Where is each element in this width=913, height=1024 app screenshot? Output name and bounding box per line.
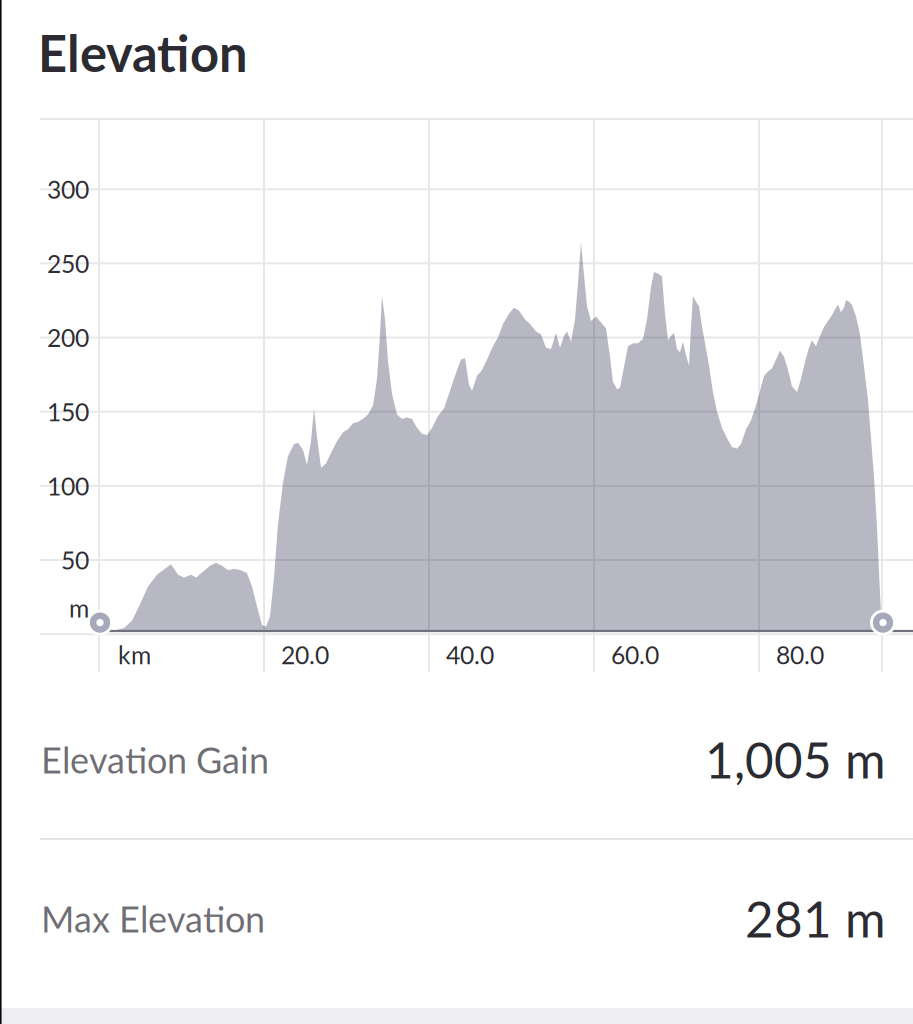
staticText: 80.0 <box>776 640 824 670</box>
staticText: 60.0 <box>611 640 659 670</box>
button[interactable]: Max Elevation <box>0 840 913 997</box>
staticText: 50 <box>61 545 89 575</box>
staticText: Max Elevation <box>41 897 265 940</box>
staticText: 200 <box>47 323 89 352</box>
staticText: Elevation Gain <box>41 738 269 781</box>
staticText: 300 <box>47 174 89 204</box>
staticText: Elevation <box>38 22 248 83</box>
staticText: 250 <box>47 249 89 278</box>
staticText: m <box>69 593 89 623</box>
staticText: 150 <box>47 397 89 426</box>
staticText: 100 <box>47 471 89 501</box>
button[interactable]: Elevation Gain <box>0 681 913 838</box>
staticText: 1,005 m <box>705 730 886 789</box>
staticText: 20.0 <box>281 640 329 670</box>
staticText: 281 m <box>745 889 886 948</box>
staticText: 40.0 <box>446 640 494 670</box>
staticText: km <box>118 640 151 670</box>
